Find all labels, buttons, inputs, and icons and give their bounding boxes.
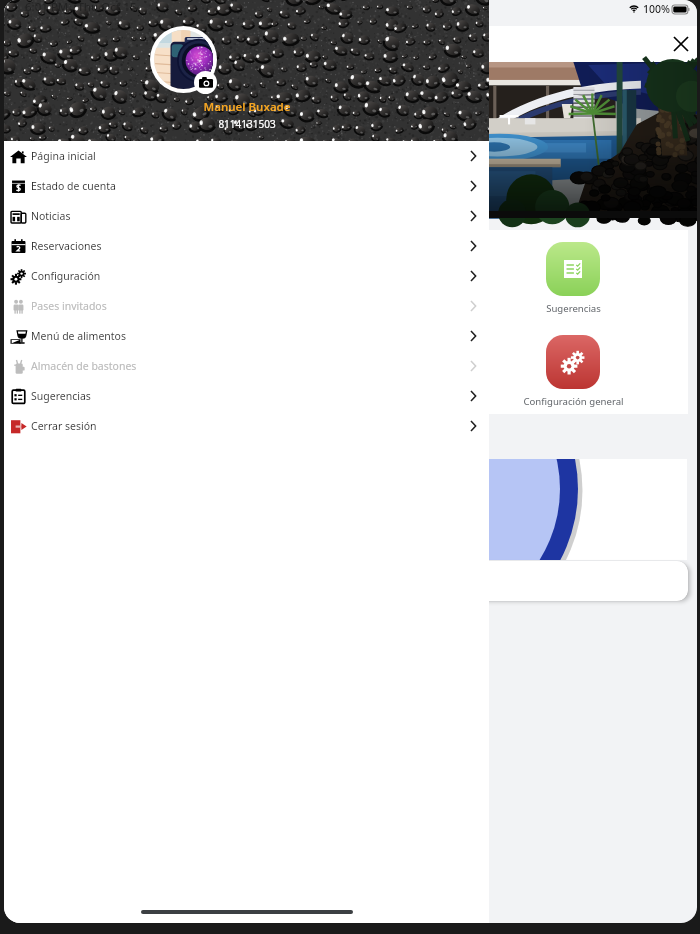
button[interactable]: Change photo: [194, 71, 217, 94]
button[interactable]: Sugerencias: [4, 381, 489, 411]
button[interactable]: Configuración general: [508, 335, 638, 408]
staticText: 8114131503: [177, 117, 317, 131]
staticText: Menú de alimentos: [31, 329, 126, 343]
button[interactable]: Sugerencias: [508, 242, 638, 315]
button[interactable]: Estado de cuenta: [4, 171, 489, 201]
button[interactable]: Noticias: [4, 201, 489, 231]
staticText: 100%: [643, 2, 670, 16]
staticText: Almacén de bastones: [31, 359, 137, 373]
staticText: Reservaciones: [31, 239, 102, 253]
staticText: Configuración: [31, 269, 101, 283]
staticText: Manuel Buxade: [177, 99, 317, 115]
staticText: Página inicial: [31, 149, 96, 163]
staticText: Cerrar sesión: [31, 419, 97, 433]
button[interactable]: Reservaciones: [4, 231, 489, 261]
button[interactable]: Close: [666, 29, 696, 59]
staticText: Pases invitados: [31, 299, 107, 313]
staticText: Estado de cuenta: [31, 179, 116, 193]
staticText: Sugerencias: [31, 389, 91, 403]
staticText: 6:01 PM Thu Oct 15: [25, 0, 137, 15]
staticText: Configuración general: [523, 395, 624, 408]
staticText: Sugerencias: [546, 302, 601, 315]
button[interactable]: Almacén de bastones: [4, 351, 489, 381]
button[interactable]: Cerrar sesión: [4, 411, 489, 441]
button[interactable]: Página inicial: [4, 141, 489, 171]
button[interactable]: Pases invitados: [4, 291, 489, 321]
staticText: Noticias: [31, 209, 71, 223]
button[interactable]: Menú de alimentos: [4, 321, 489, 351]
button[interactable]: Configuración: [4, 261, 489, 291]
